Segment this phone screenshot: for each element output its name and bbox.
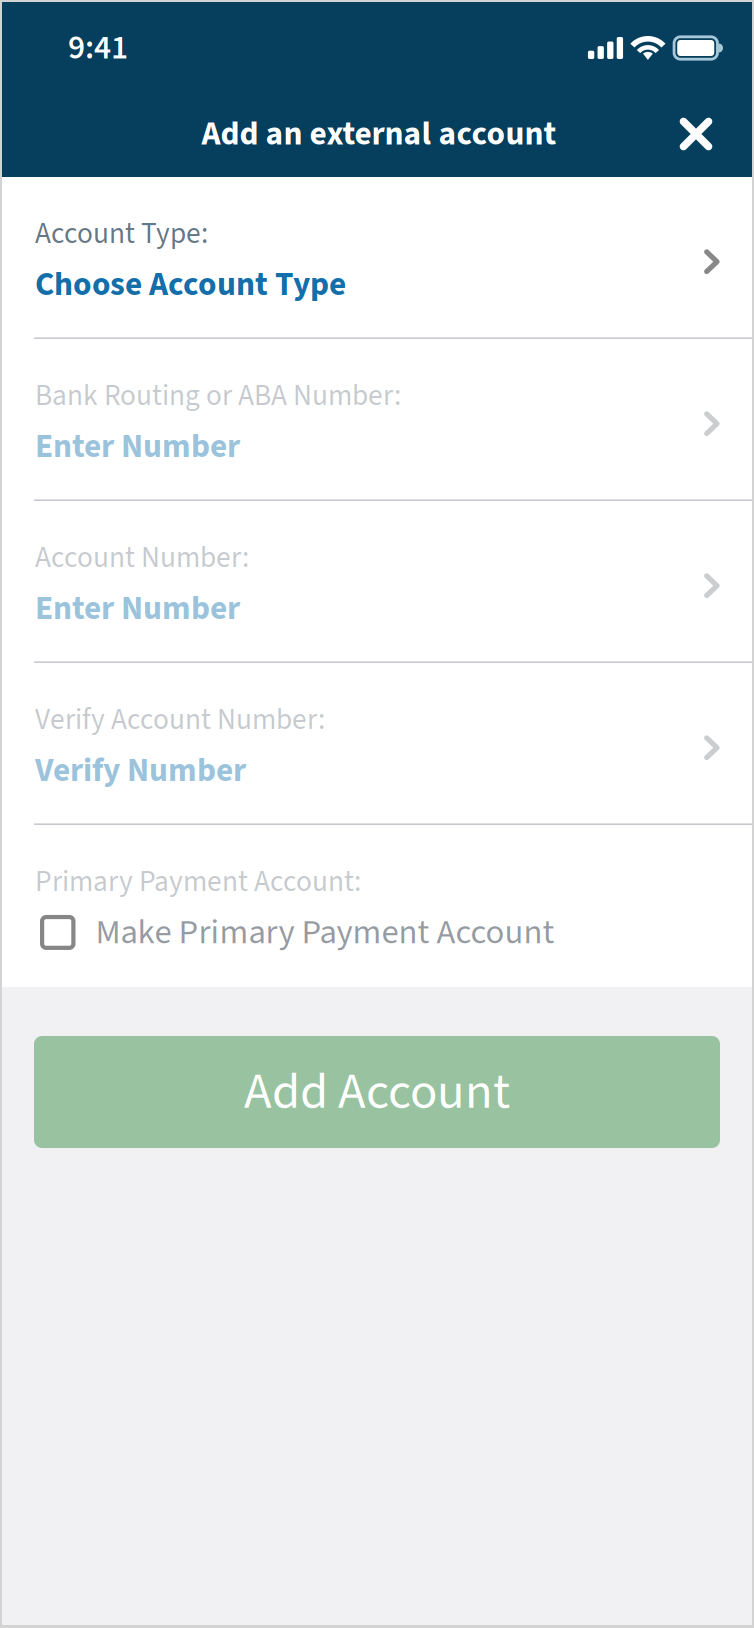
button[interactable]: Bank Routing or ABA Number: [0,339,754,501]
staticText: Account Number: [35,537,249,579]
button[interactable]: Verify Account Number: [0,663,754,825]
staticText: Account Type: [35,213,208,255]
staticText: Add Account [244,1056,510,1128]
staticText: Add an external account [201,110,556,158]
staticText: Enter Number [35,585,240,632]
button[interactable]: Account Number: [0,501,754,663]
button[interactable]: Add Account [34,1036,720,1148]
staticText: Enter Number [35,423,240,470]
staticText: Verify Number [35,747,246,794]
staticText: Verify Account Number: [35,699,325,741]
staticText: Bank Routing or ABA Number: [35,375,401,417]
staticText: Make Primary Payment Account [95,908,554,957]
staticText: Choose Account Type [35,261,346,308]
button[interactable]: Make Primary Payment Account [0,903,754,957]
button[interactable]: Account Type: [0,177,754,339]
staticText: Primary Payment Account: [35,861,361,903]
button[interactable]: Close [665,103,727,165]
staticText: 9:41 [68,24,128,72]
